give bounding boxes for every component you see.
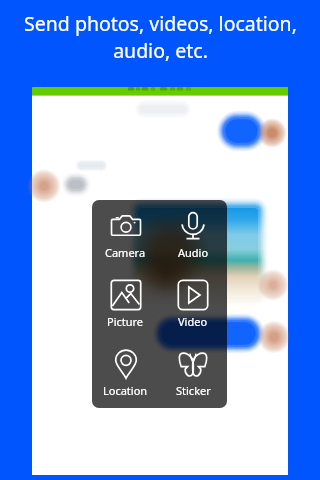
button[interactable]: Location [92,338,159,407]
staticText: Sticker [176,383,211,398]
staticText: Send photos, videos, location, audio, et… [24,10,297,64]
button[interactable]: Sticker [159,338,227,407]
staticText: Location [103,383,148,398]
button[interactable]: Picture [92,269,159,338]
staticText: Video [178,314,208,329]
staticText: Audio [178,245,209,260]
staticText: Picture [107,314,144,329]
button[interactable]: Camera [92,200,159,269]
button[interactable]: Video [159,269,227,338]
staticText: Camera [105,245,146,260]
button[interactable]: Audio [159,200,227,269]
